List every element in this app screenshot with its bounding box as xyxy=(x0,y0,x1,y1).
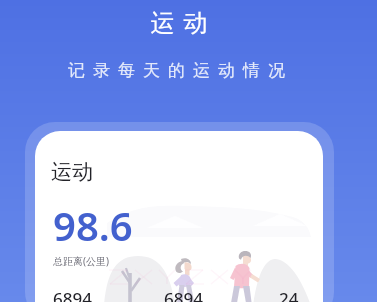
staticText: 运动 xyxy=(51,159,93,185)
button[interactable]: 运动 xyxy=(35,131,323,302)
staticText: 24 xyxy=(279,287,299,302)
staticText: 6894 xyxy=(53,287,92,302)
staticText: 98.6 xyxy=(53,198,133,252)
staticText: 6894 xyxy=(164,287,203,302)
staticText: 运动 xyxy=(146,8,212,38)
staticText: 记录每天的运动情况 xyxy=(64,60,289,81)
staticText: 总距离(公里) xyxy=(53,254,109,268)
